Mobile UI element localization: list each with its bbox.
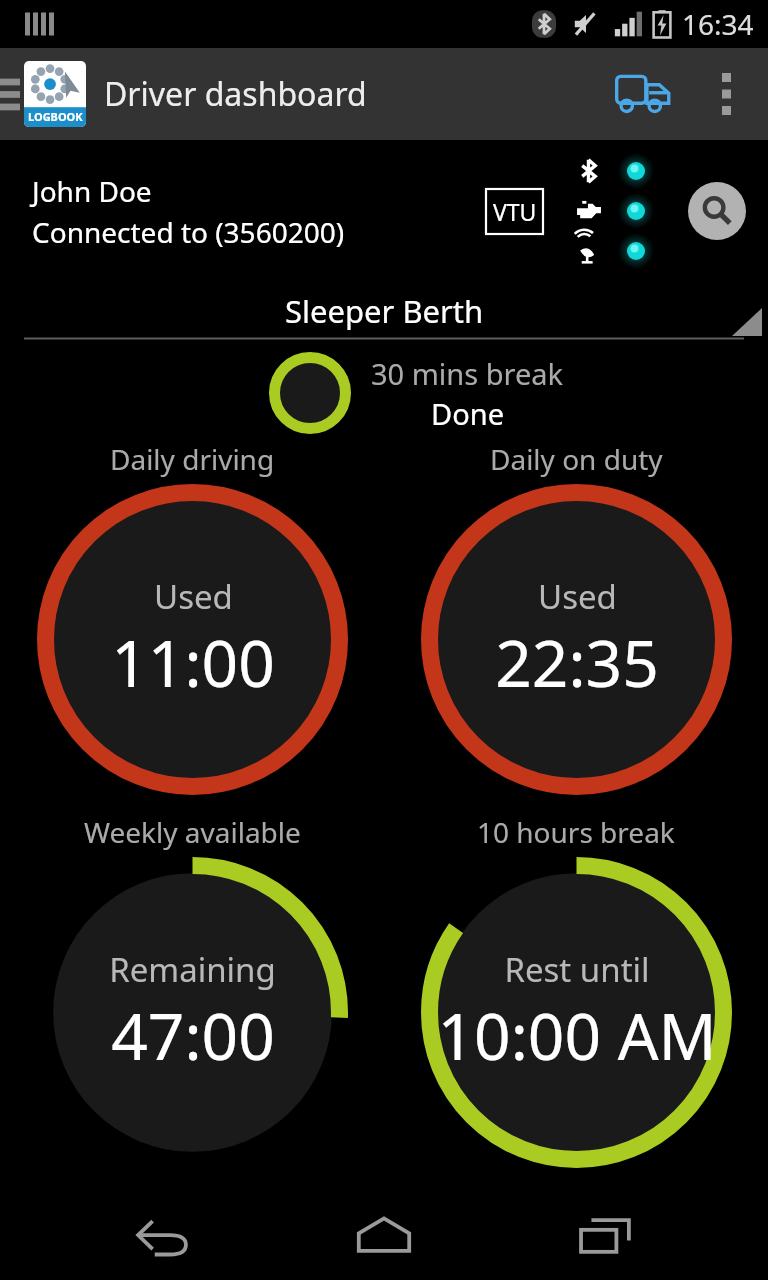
staticText: Weekly available: [84, 813, 301, 851]
button[interactable]: Recent apps: [546, 1192, 666, 1280]
button[interactable]: Sleeper Berth: [0, 282, 768, 340]
button[interactable]: Back: [102, 1192, 222, 1280]
staticText: 10 hours break: [477, 813, 675, 851]
staticText: VTU: [493, 196, 537, 227]
staticText: Used: [538, 574, 617, 619]
staticText: Driver dashboard: [104, 72, 367, 116]
staticText: 22:35: [495, 619, 659, 706]
button[interactable]: Home: [324, 1192, 444, 1280]
staticText: Done: [431, 394, 504, 433]
staticText: Used: [154, 574, 233, 619]
staticText: Daily driving: [110, 440, 275, 478]
staticText: 47:00: [111, 992, 275, 1079]
staticText: 16:34: [682, 5, 754, 43]
staticText: John Doe: [32, 172, 152, 210]
button[interactable]: Daily driving: [0, 440, 384, 795]
staticText: Remaining: [109, 947, 276, 992]
button[interactable]: 10 hours break: [384, 813, 768, 1168]
staticText: Rest until: [504, 947, 650, 992]
staticText: Connected to (3560200): [32, 213, 345, 251]
staticText: LOGBOOK: [28, 109, 83, 124]
staticText: Daily on duty: [490, 440, 663, 478]
button[interactable]: Search: [688, 182, 746, 240]
staticText: 10:00 AM: [437, 992, 717, 1079]
staticText: 30 mins break: [371, 354, 564, 393]
button[interactable]: Daily on duty: [384, 440, 768, 795]
staticText: 11:00: [111, 619, 275, 706]
button[interactable]: More options: [696, 64, 756, 124]
button[interactable]: VTU: [486, 189, 543, 234]
staticText: Sleeper Berth: [285, 290, 484, 332]
button[interactable]: 30 mins break: [0, 346, 768, 440]
button[interactable]: Open navigation drawer: [0, 70, 22, 118]
button[interactable]: Vehicle: [608, 59, 678, 129]
button[interactable]: Weekly available: [0, 813, 384, 1168]
